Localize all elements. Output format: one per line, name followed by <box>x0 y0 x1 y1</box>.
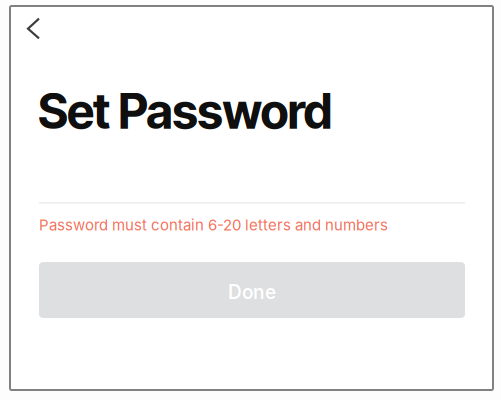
button[interactable]: Back <box>18 10 58 50</box>
staticText: Password must contain 6-20 letters and n… <box>39 216 388 234</box>
staticText: Set Password <box>38 82 332 140</box>
button[interactable]: Done <box>39 262 465 318</box>
staticText: Done <box>228 280 276 303</box>
